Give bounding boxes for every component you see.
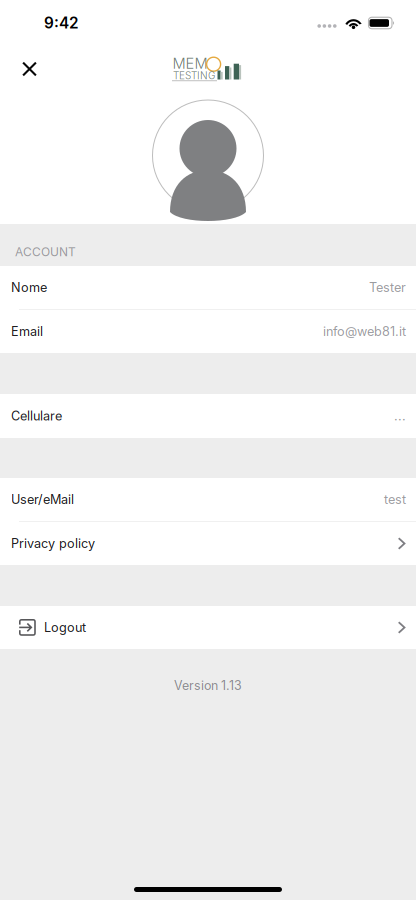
staticText: User/eMail (11, 492, 74, 507)
button[interactable]: Email (0, 310, 416, 353)
staticText: ACCOUNT (15, 245, 76, 259)
staticText: Email (11, 324, 43, 339)
staticText: ... (394, 408, 406, 424)
staticText: MEM (173, 55, 208, 72)
staticText: test (384, 492, 406, 507)
staticText: Tester (369, 280, 406, 295)
button[interactable]: Privacy policy (0, 522, 416, 565)
staticText: Logout (44, 620, 86, 635)
staticText: Nome (11, 280, 47, 295)
staticText: TESTING (173, 70, 215, 82)
staticText: Cellulare (11, 408, 62, 424)
staticText: Version 1.13 (174, 678, 242, 693)
staticText: 9:42 (44, 14, 79, 32)
button[interactable]: Cellulare (0, 394, 416, 438)
button[interactable]: Close (0, 46, 50, 87)
button[interactable]: Logout (0, 606, 416, 649)
staticText: info@web81.it (323, 324, 406, 339)
staticText: Privacy policy (11, 536, 95, 551)
button[interactable]: Nome (0, 266, 416, 309)
button[interactable]: User/eMail (0, 478, 416, 521)
